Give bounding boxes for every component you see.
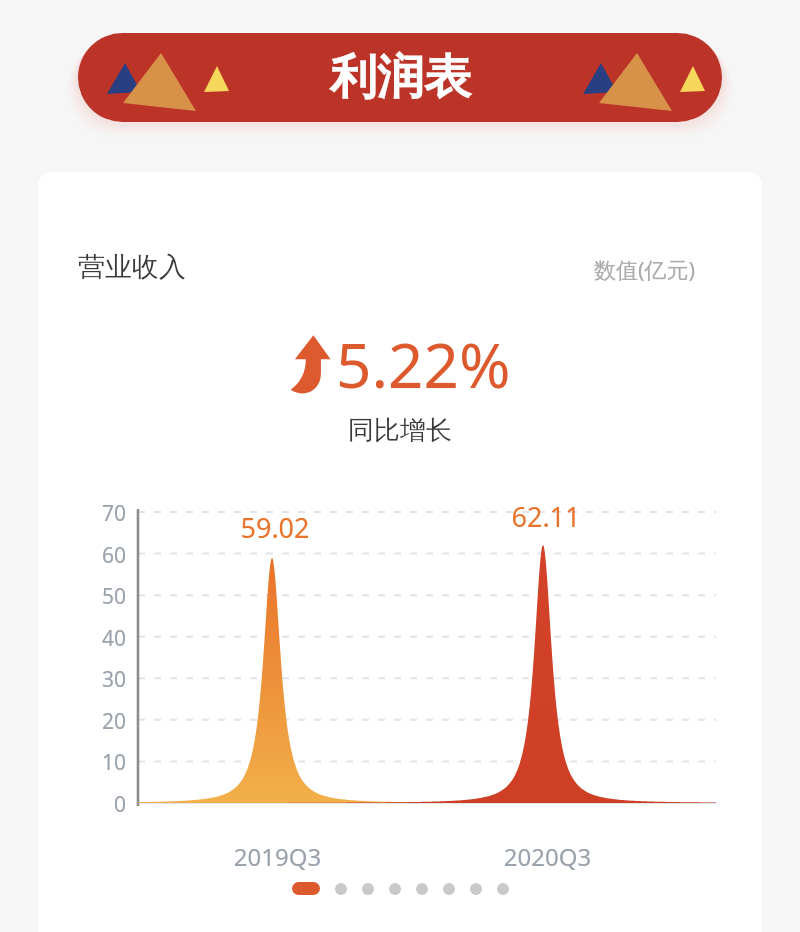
staticText: 50 <box>76 582 126 611</box>
staticText: 2019Q3 <box>200 840 355 873</box>
staticText: 数值(亿元) <box>594 254 696 284</box>
button[interactable]: Page 7 <box>470 883 482 895</box>
button[interactable]: Page 8 <box>497 883 509 895</box>
staticText: 5.22% <box>336 322 511 406</box>
button[interactable]: Page 5 <box>416 883 428 895</box>
staticText: 20 <box>76 707 126 736</box>
staticText: 0 <box>76 790 126 819</box>
staticText: 10 <box>76 748 126 777</box>
button[interactable]: Page 4 <box>389 883 401 895</box>
button[interactable]: Page 3 <box>362 883 374 895</box>
staticText: 30 <box>76 665 126 694</box>
staticText: 70 <box>76 499 126 528</box>
staticText: 利润表 <box>330 48 471 107</box>
button[interactable]: Page 1 <box>292 882 320 895</box>
staticText: 40 <box>76 624 126 653</box>
button[interactable]: Page 6 <box>443 883 455 895</box>
staticText: 同比增长 <box>38 414 762 447</box>
staticText: 62.11 <box>486 498 606 535</box>
staticText: 2020Q3 <box>470 840 625 873</box>
button[interactable]: Page 2 <box>335 883 347 895</box>
staticText: 60 <box>76 541 126 570</box>
button[interactable]: 利润表 <box>78 33 722 122</box>
staticText: 59.02 <box>215 509 335 546</box>
staticText: 营业收入 <box>78 250 186 284</box>
